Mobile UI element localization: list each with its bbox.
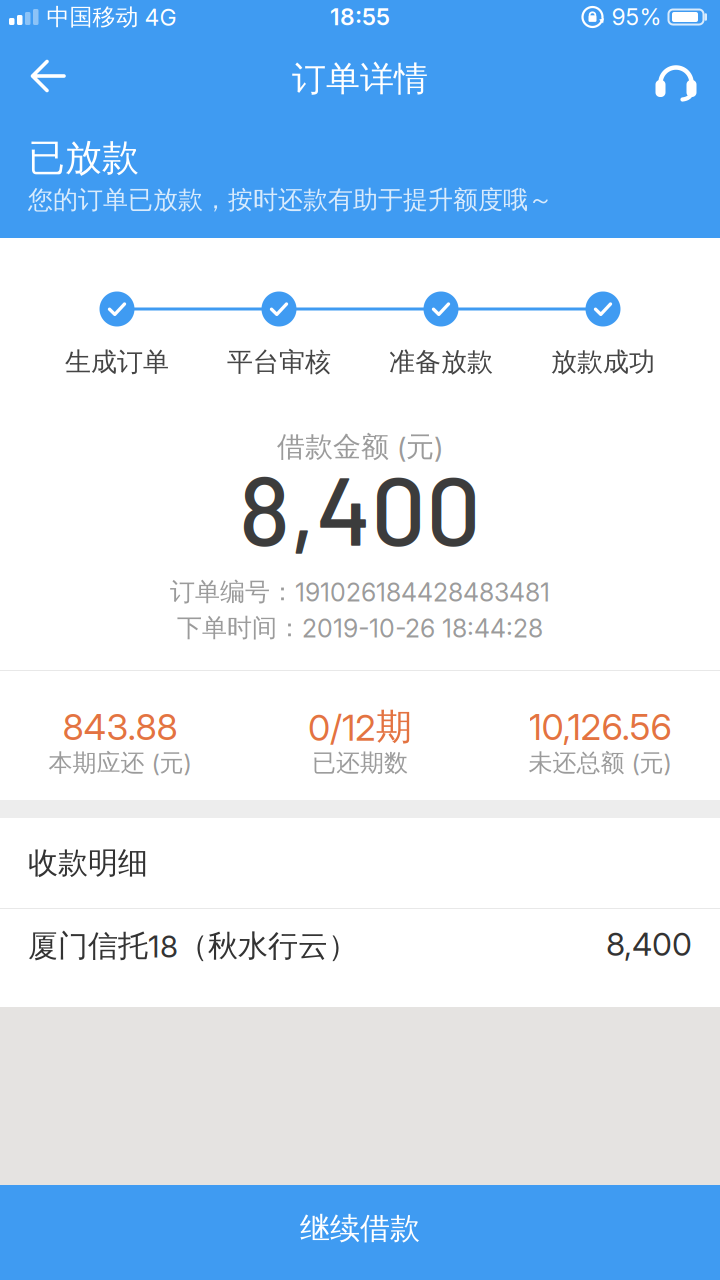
- staticText: 18:55: [330, 3, 390, 31]
- staticText: 收款明细: [28, 844, 148, 882]
- button[interactable]: Customer service: [644, 47, 708, 111]
- staticText: 订单编号：191026184428483481: [170, 576, 550, 608]
- staticText: 0/12期: [308, 704, 412, 750]
- staticText: 95%: [611, 3, 661, 31]
- staticText: 8,400: [606, 925, 692, 963]
- staticText: 生成订单: [65, 346, 169, 378]
- staticText: 未还总额 (元): [528, 748, 671, 778]
- staticText: 8,400: [239, 449, 481, 565]
- staticText: 已放款: [28, 135, 139, 181]
- staticText: 下单时间：2019-10-26 18:44:28: [177, 612, 543, 644]
- staticText: 订单详情: [292, 58, 428, 100]
- staticText: 中国移动 4G: [46, 2, 176, 31]
- staticText: 您的订单已放款，按时还款有助于提升额度哦～: [28, 184, 553, 216]
- staticText: 借款金额 (元): [277, 429, 443, 465]
- staticText: 843.88: [62, 705, 177, 749]
- staticText: 准备放款: [389, 346, 493, 378]
- button[interactable]: Back: [10, 47, 74, 111]
- staticText: 平台审核: [227, 346, 331, 378]
- button[interactable]: 继续借款: [0, 1185, 720, 1280]
- staticText: 本期应还 (元): [48, 748, 191, 778]
- staticText: 厦门信托18（秋水行云）: [28, 927, 358, 965]
- staticText: 继续借款: [300, 1210, 420, 1247]
- staticText: 放款成功: [551, 346, 655, 378]
- staticText: 10,126.56: [528, 705, 671, 749]
- staticText: 已还期数: [312, 748, 408, 778]
